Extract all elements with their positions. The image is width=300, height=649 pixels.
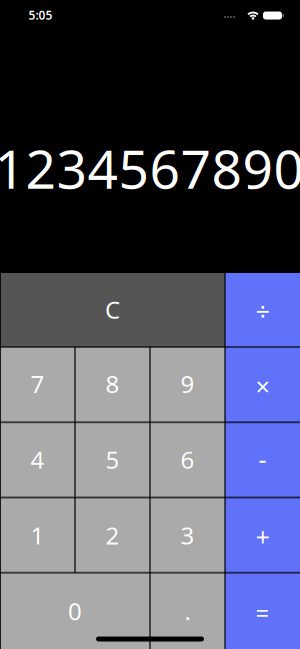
- button[interactable]: ÷: [225, 273, 300, 347]
- staticText: 5: [105, 443, 119, 475]
- staticText: 7: [30, 368, 44, 400]
- button[interactable]: 5: [75, 422, 150, 497]
- staticText: 0: [68, 595, 82, 627]
- button[interactable]: ×: [225, 347, 300, 422]
- button[interactable]: 1: [0, 497, 75, 573]
- staticText: =: [255, 596, 269, 628]
- button[interactable]: -: [225, 422, 300, 497]
- button[interactable]: 9: [150, 347, 225, 422]
- staticText: 4: [30, 443, 44, 475]
- button[interactable]: 0: [0, 573, 150, 649]
- staticText: 6: [180, 443, 194, 475]
- button[interactable]: 4: [0, 422, 75, 497]
- button[interactable]: 2: [75, 497, 150, 573]
- staticText: 1234567890: [0, 133, 300, 203]
- staticText: 8: [105, 368, 119, 400]
- staticText: 9: [180, 368, 194, 400]
- staticText: .: [184, 595, 190, 627]
- staticText: +: [255, 520, 269, 553]
- button[interactable]: =: [225, 573, 300, 649]
- button[interactable]: +: [225, 497, 300, 573]
- staticText: C: [105, 294, 120, 325]
- staticText: 2: [105, 519, 119, 551]
- button[interactable]: 3: [150, 497, 225, 573]
- button[interactable]: 8: [75, 347, 150, 422]
- staticText: 5:05: [28, 7, 52, 23]
- staticText: ×: [255, 369, 269, 403]
- button[interactable]: .: [150, 573, 225, 649]
- staticText: ÷: [255, 294, 269, 328]
- staticText: 1: [30, 519, 44, 551]
- button[interactable]: 6: [150, 422, 225, 497]
- staticText: -: [258, 442, 266, 476]
- staticText: 3: [180, 519, 194, 551]
- button[interactable]: C: [0, 273, 225, 347]
- button[interactable]: 7: [0, 347, 75, 422]
